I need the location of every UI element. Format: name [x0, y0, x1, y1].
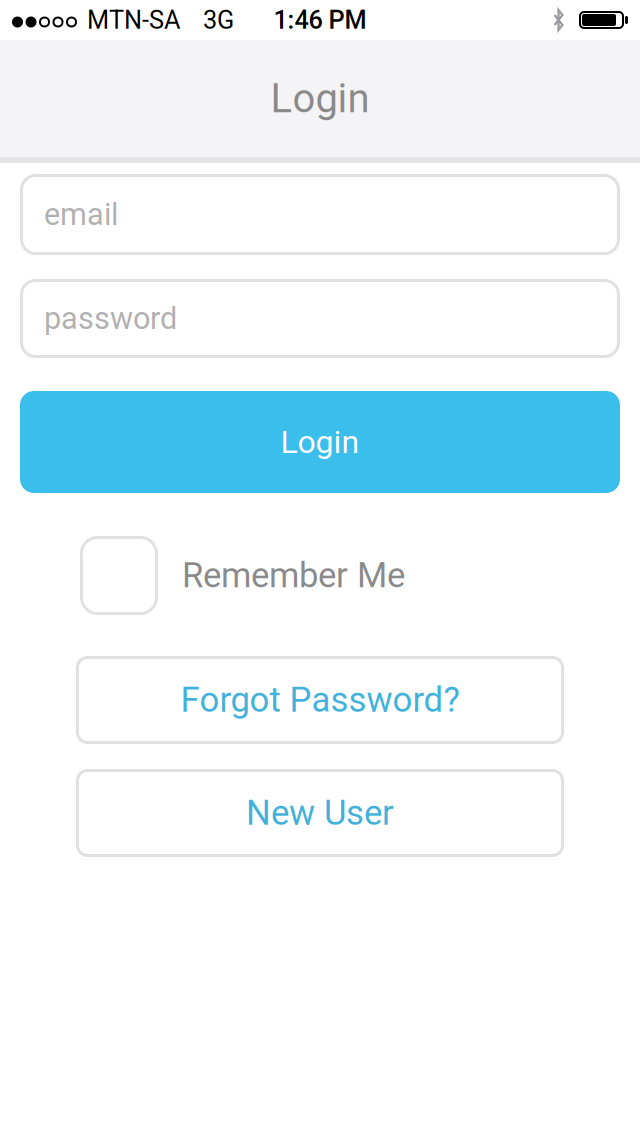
staticText: Remember Me	[182, 555, 405, 596]
button[interactable]: Remember Me	[0, 536, 640, 615]
staticText: 1:46 PM	[273, 5, 366, 35]
staticText: email	[44, 196, 118, 232]
button[interactable]: email	[20, 174, 620, 255]
staticText: Forgot Password?	[180, 680, 459, 720]
staticText: MTN-SA	[87, 5, 181, 35]
button[interactable]: New User	[76, 769, 564, 857]
staticText: Login	[270, 75, 369, 122]
button[interactable]: Login	[20, 391, 620, 493]
staticText: New User	[246, 793, 394, 833]
staticText: Login	[280, 423, 359, 461]
button[interactable]: Forgot Password?	[76, 656, 564, 744]
staticText: password	[44, 300, 177, 336]
staticText: 3G	[203, 5, 234, 35]
button[interactable]: password	[20, 279, 620, 358]
